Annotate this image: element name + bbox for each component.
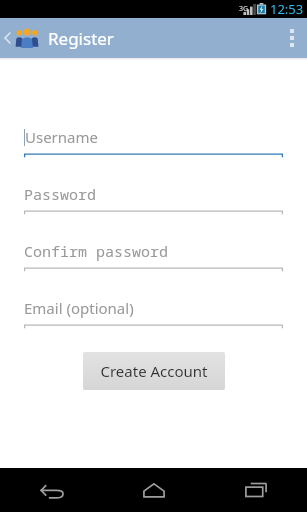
- staticText: 3G: [239, 4, 249, 14]
- staticText: Confirm password: [24, 241, 169, 261]
- staticText: 12:53: [270, 0, 304, 18]
- staticText: Password: [24, 184, 97, 204]
- button[interactable]: Username: [24, 126, 283, 157]
- staticText: Email (optional): [24, 298, 134, 318]
- button[interactable]: Back: [0, 468, 103, 512]
- button[interactable]: Home: [103, 468, 205, 512]
- button[interactable]: More options: [277, 18, 307, 58]
- button[interactable]: Recent apps: [205, 468, 307, 512]
- staticText: Create Account: [100, 361, 208, 381]
- button[interactable]: Password: [24, 183, 283, 214]
- button[interactable]: Email (optional): [24, 297, 283, 328]
- button[interactable]: Create Account: [83, 352, 225, 390]
- button[interactable]: Confirm password: [24, 240, 283, 271]
- button[interactable]: Navigate up: [2, 18, 114, 58]
- staticText: Register: [48, 27, 114, 50]
- staticText: Username: [25, 127, 98, 147]
